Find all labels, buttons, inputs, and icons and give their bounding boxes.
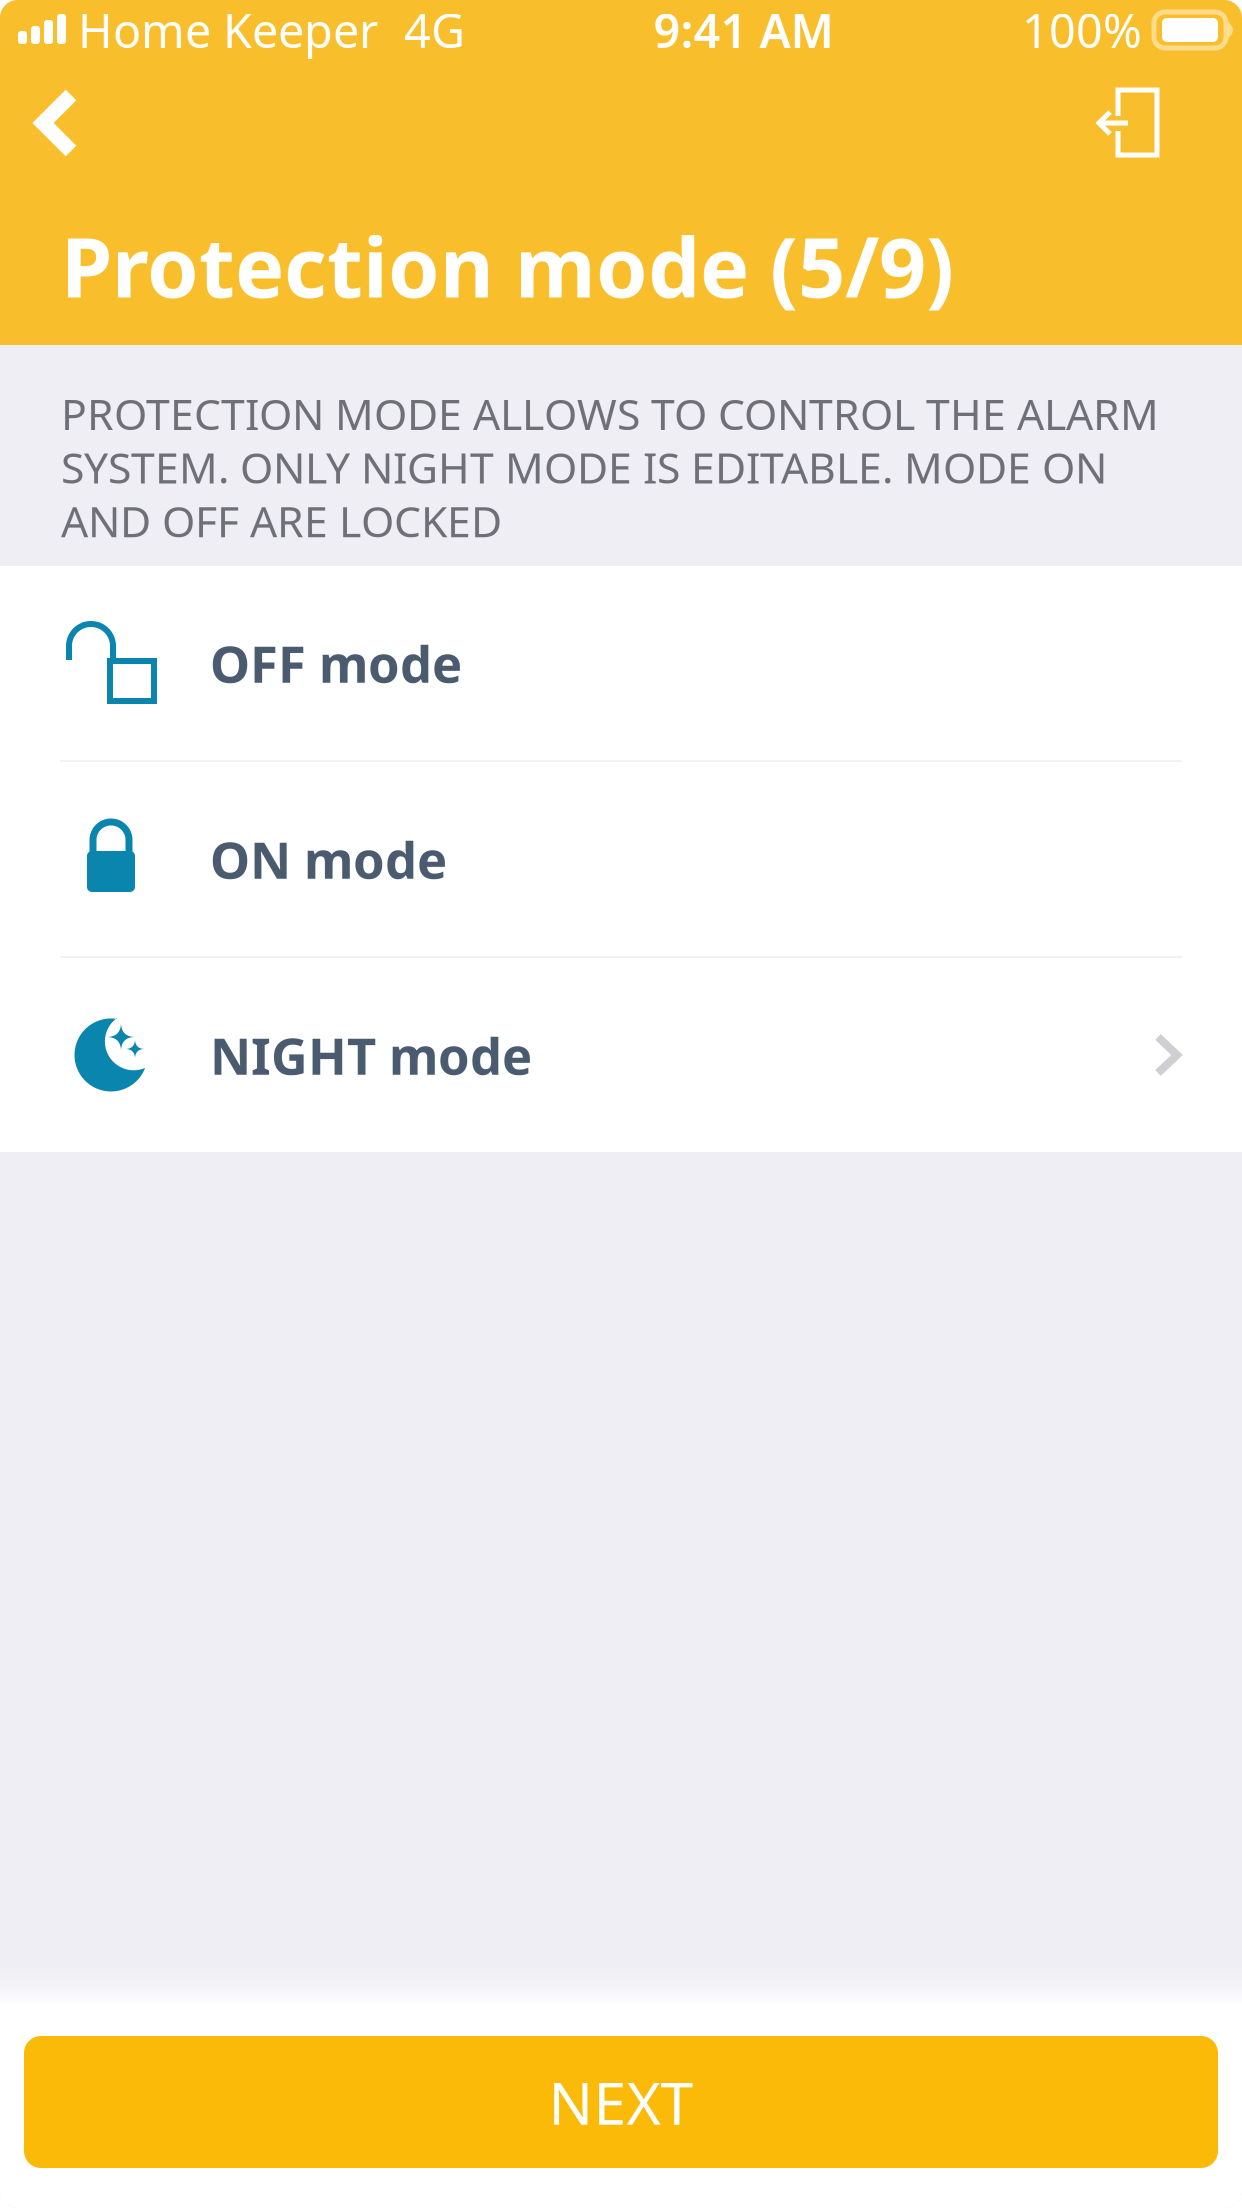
staticText: NEXT [548, 2063, 693, 2141]
button[interactable]: NIGHT mode [0, 958, 1242, 1152]
button[interactable]: Back [0, 60, 114, 186]
staticText: ON mode [210, 825, 447, 893]
staticText: 100% [1022, 0, 1142, 61]
staticText: PROTECTION MODE ALLOWS TO CONTROL THE AL… [61, 385, 1159, 549]
staticText: 9:41 AM [653, 0, 833, 61]
button[interactable]: ON mode [0, 762, 1242, 956]
staticText: Home Keeper [78, 0, 378, 61]
staticText: 4G [404, 0, 465, 61]
button[interactable]: OFF mode [0, 566, 1242, 760]
staticText: NIGHT mode [210, 1021, 532, 1089]
button[interactable]: Log out [1065, 60, 1191, 186]
staticText: Protection mode (5/9) [61, 211, 954, 320]
button[interactable]: NEXT [24, 2036, 1218, 2168]
staticText: OFF mode [210, 629, 462, 697]
